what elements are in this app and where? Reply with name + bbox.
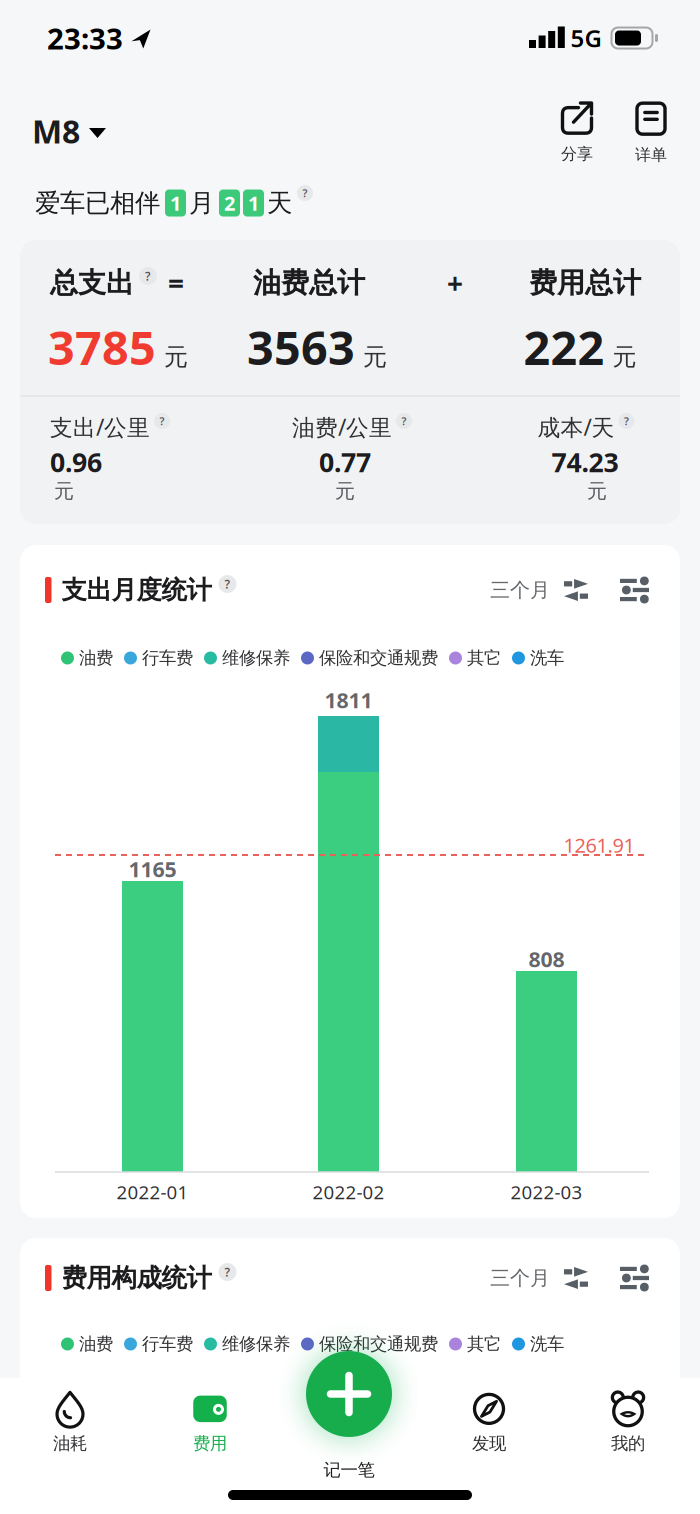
staticText: 行车费 — [142, 1333, 193, 1355]
staticText: 费用总计 — [529, 266, 641, 300]
staticText: 保险和交通规费 — [319, 647, 438, 669]
staticText: 元 — [164, 342, 188, 372]
button[interactable]: ? — [218, 575, 236, 593]
staticText: = — [168, 264, 184, 302]
staticText: 维修保养 — [222, 647, 290, 669]
button[interactable] — [620, 578, 649, 601]
staticText: ? — [624, 414, 629, 428]
button[interactable]: 三个月 — [490, 578, 588, 602]
button[interactable]: ? — [154, 413, 170, 429]
staticText: 总支出 — [50, 266, 134, 300]
staticText: M8 — [32, 110, 80, 152]
staticText: 2 — [224, 190, 235, 216]
staticText: 费用 — [193, 1433, 227, 1454]
staticText: 油费/公里 — [292, 412, 392, 442]
staticText: 3563 — [247, 316, 355, 378]
staticText: 0.77 — [319, 444, 371, 480]
staticText: 元 — [363, 342, 387, 372]
staticText: 洗车 — [530, 647, 564, 669]
staticText: 支出/公里 — [50, 412, 150, 442]
button[interactable]: ? — [139, 267, 157, 285]
staticText: 1 — [170, 190, 181, 216]
button[interactable]: 我的 — [578, 1385, 678, 1461]
staticText: 费用构成统计 — [61, 1262, 211, 1293]
staticText: 成本/天 — [537, 412, 614, 442]
staticText: 我的 — [611, 1433, 645, 1454]
staticText: 元 — [612, 342, 636, 372]
staticText: ? — [159, 414, 164, 428]
staticText: ? — [401, 414, 406, 428]
button[interactable]: 发现 — [439, 1385, 539, 1461]
button[interactable] — [306, 1351, 392, 1437]
button[interactable]: 费用 — [160, 1385, 260, 1461]
staticText: 元 — [54, 479, 74, 503]
staticText: 23:33 — [47, 18, 123, 57]
staticText: 2022-03 — [510, 1180, 582, 1204]
staticText: 三个月 — [490, 578, 550, 602]
staticText: ? — [224, 1264, 230, 1280]
staticText: 3785 — [48, 316, 156, 378]
button[interactable]: 分享 — [545, 101, 609, 167]
staticText: 2022-02 — [312, 1180, 384, 1204]
staticText: 支出月度统计 — [61, 574, 211, 605]
staticText: ? — [145, 268, 151, 284]
staticText: 维修保养 — [222, 1333, 290, 1355]
staticText: 分享 — [561, 144, 593, 164]
button[interactable]: ? — [218, 1263, 236, 1281]
staticText: 808 — [528, 945, 564, 973]
staticText: 1261.91 — [563, 832, 634, 858]
staticText: 1165 — [128, 855, 176, 883]
staticText: 爱车已相伴 — [35, 187, 160, 218]
staticText: 天 — [267, 187, 292, 218]
staticText: 发现 — [472, 1433, 506, 1454]
staticText: 1811 — [324, 686, 372, 714]
staticText: ? — [224, 576, 230, 592]
staticText: 记一笔 — [323, 1459, 374, 1481]
staticText: ? — [302, 186, 307, 200]
button[interactable]: M8 — [32, 109, 142, 153]
button[interactable]: 详单 — [619, 101, 683, 167]
staticText: 其它 — [467, 1333, 501, 1355]
staticText: 油费 — [79, 1333, 113, 1355]
button[interactable]: ? — [396, 413, 412, 429]
staticText: 0.96 — [50, 444, 102, 480]
staticText: 油费 — [79, 647, 113, 669]
button[interactable]: 油耗 — [20, 1385, 120, 1461]
staticText: 5G — [570, 22, 601, 54]
staticText: 详单 — [635, 145, 667, 165]
staticText: 洗车 — [530, 1333, 564, 1355]
staticText: 油费总计 — [253, 266, 365, 300]
staticText: 月 — [189, 187, 214, 218]
staticText: 元 — [335, 479, 355, 503]
button[interactable]: ? — [618, 413, 634, 429]
staticText: 元 — [587, 479, 607, 503]
button[interactable]: 三个月 — [490, 1266, 588, 1290]
staticText: 74.23 — [551, 444, 618, 480]
staticText: 保险和交通规费 — [319, 1333, 438, 1355]
staticText: 行车费 — [142, 647, 193, 669]
staticText: 三个月 — [490, 1266, 550, 1290]
staticText: 222 — [523, 316, 604, 378]
staticText: + — [447, 264, 463, 302]
button[interactable] — [620, 1266, 649, 1289]
staticText: 1 — [248, 190, 259, 216]
staticText: 2022-01 — [116, 1180, 188, 1204]
button[interactable]: ? — [297, 185, 313, 201]
staticText: 其它 — [467, 647, 501, 669]
staticText: 油耗 — [53, 1433, 87, 1454]
